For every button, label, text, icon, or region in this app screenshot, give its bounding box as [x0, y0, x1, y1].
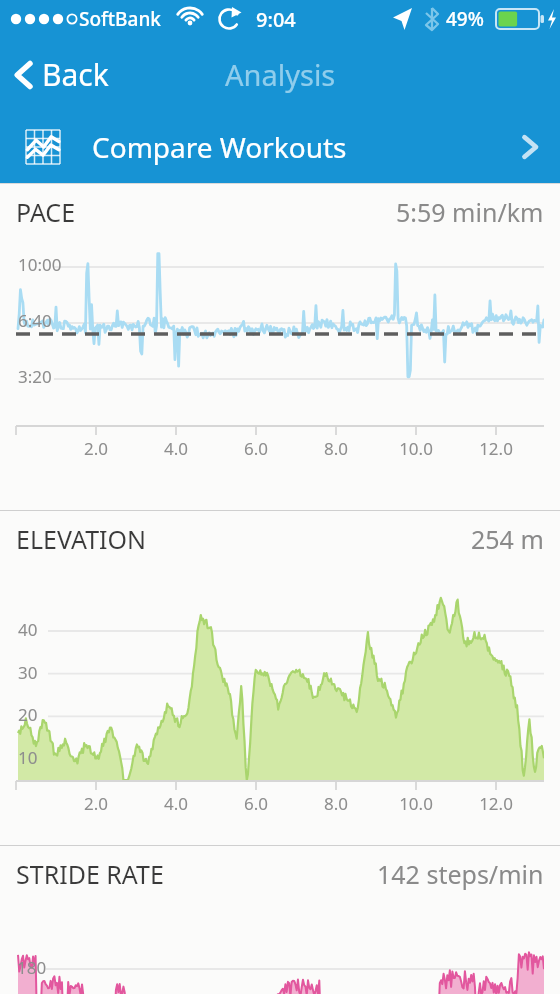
staticText: 2.0 [66, 437, 126, 460]
staticText: 10 [18, 746, 38, 769]
staticText: 30 [18, 661, 38, 684]
staticText: 3:20 [18, 365, 52, 388]
staticText: 4.0 [146, 792, 206, 815]
staticText: Back [42, 54, 109, 95]
staticText: 12.0 [466, 437, 526, 460]
staticText: 12.0 [466, 792, 526, 815]
staticText: 10:00 [18, 253, 62, 276]
staticText: 20 [18, 703, 38, 726]
staticText: 180 [17, 956, 47, 979]
staticText: 40 [18, 618, 38, 641]
staticText: 2.0 [66, 792, 126, 815]
staticText: 10.0 [386, 437, 446, 460]
staticText: PACE [16, 195, 76, 229]
staticText: STRIDE RATE [16, 857, 164, 891]
staticText: 8.0 [306, 437, 366, 460]
button[interactable]: Back [0, 44, 127, 105]
staticText: 49% [446, 6, 484, 32]
staticText: 254 m [471, 522, 544, 556]
staticText: 8.0 [306, 792, 366, 815]
other: Compare Workouts [522, 134, 538, 160]
staticText: Compare Workouts [92, 128, 347, 166]
staticText: 6:40 [18, 309, 52, 332]
staticText: 6.0 [226, 792, 286, 815]
staticText: ELEVATION [16, 522, 147, 556]
staticText: Analysis [225, 55, 336, 94]
staticText: 6.0 [226, 437, 286, 460]
staticText: 9:04 [256, 6, 296, 33]
staticText: 5:59 min/km [396, 195, 544, 229]
staticText: 10.0 [386, 792, 446, 815]
staticText: 4.0 [146, 437, 206, 460]
button[interactable]: Compare Workouts [0, 110, 560, 183]
staticText: 142 steps/min [377, 857, 544, 891]
staticText: SoftBank [79, 6, 161, 32]
